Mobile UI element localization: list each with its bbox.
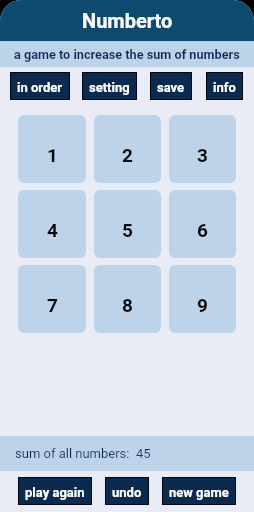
- button[interactable]: setting: [82, 72, 137, 100]
- staticText: save: [157, 80, 185, 95]
- button[interactable]: 7: [18, 265, 86, 333]
- staticText: a game to increase the sum of numbers: [14, 47, 240, 62]
- button[interactable]: info: [206, 72, 243, 100]
- button[interactable]: undo: [105, 477, 149, 505]
- staticText: 5: [122, 219, 133, 241]
- staticText: 8: [122, 294, 133, 316]
- button[interactable]: in order: [10, 72, 70, 100]
- button[interactable]: 4: [18, 190, 86, 258]
- staticText: sum of all numbers: 45: [15, 446, 151, 461]
- button[interactable]: 8: [94, 265, 161, 333]
- staticText: Numberto: [82, 9, 173, 32]
- staticText: 1: [47, 144, 58, 166]
- button[interactable]: 1: [18, 115, 86, 183]
- staticText: new game: [169, 485, 229, 500]
- button[interactable]: save: [150, 72, 192, 100]
- staticText: 7: [47, 294, 58, 316]
- button[interactable]: 2: [94, 115, 161, 183]
- staticText: in order: [17, 80, 63, 95]
- staticText: 4: [47, 219, 58, 241]
- button[interactable]: 6: [169, 190, 236, 258]
- staticText: 6: [197, 219, 208, 241]
- button[interactable]: new game: [162, 477, 236, 505]
- staticText: info: [213, 80, 236, 95]
- button[interactable]: play again: [18, 477, 92, 505]
- staticText: undo: [112, 485, 142, 500]
- button[interactable]: 5: [94, 190, 161, 258]
- staticText: 9: [197, 294, 208, 316]
- staticText: 2: [122, 144, 133, 166]
- staticText: play again: [25, 485, 85, 500]
- staticText: 3: [197, 144, 208, 166]
- button[interactable]: 9: [169, 265, 236, 333]
- staticText: setting: [89, 80, 130, 95]
- button[interactable]: 3: [169, 115, 236, 183]
